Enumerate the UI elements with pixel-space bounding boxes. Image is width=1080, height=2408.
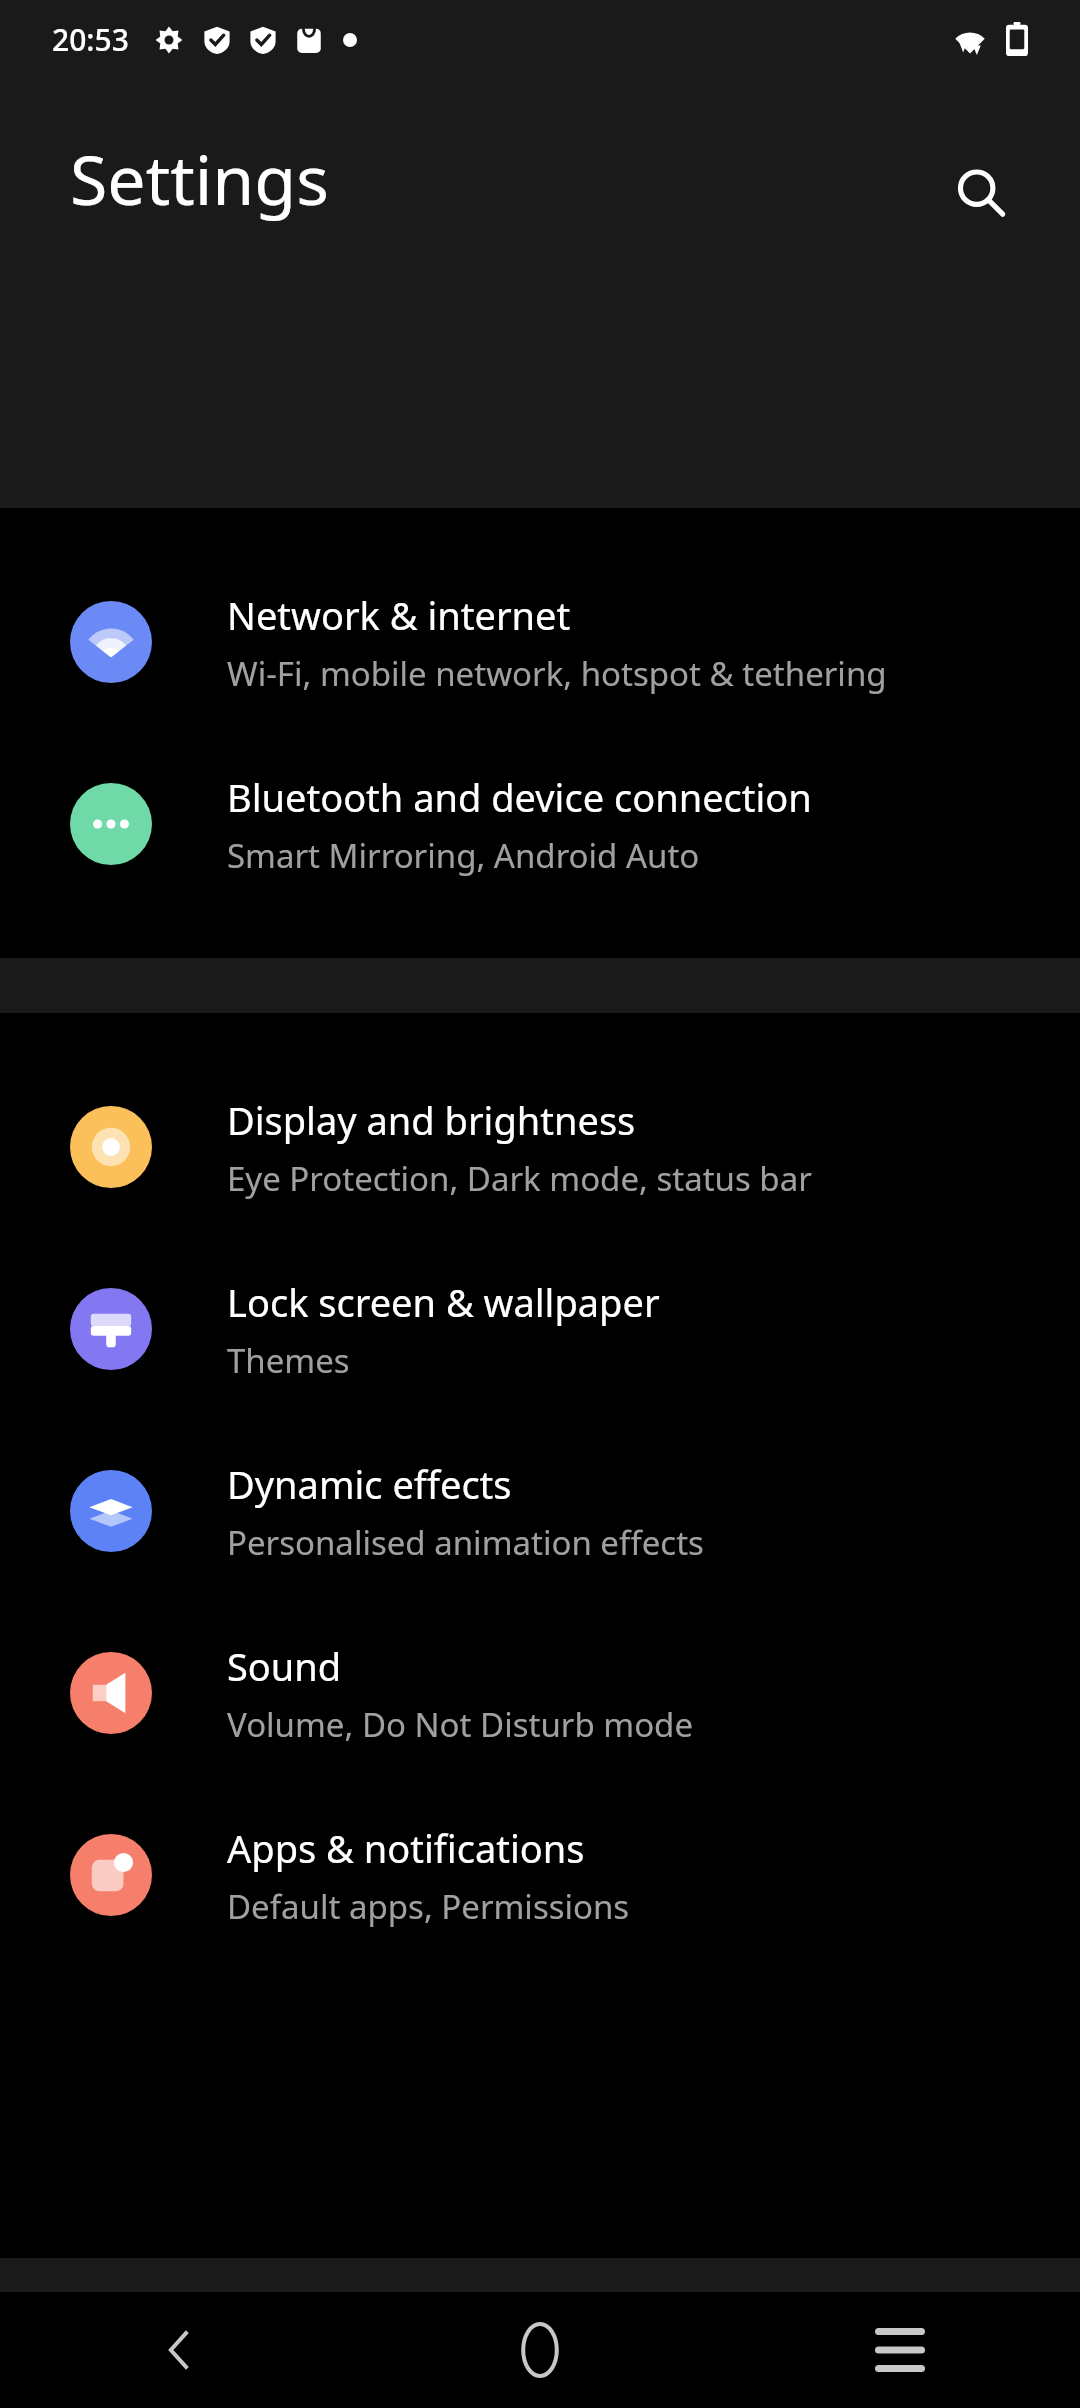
button[interactable]: Home (360, 2292, 720, 2408)
staticText: Volume, Do Not Disturb mode (227, 1702, 694, 1747)
staticText: Wi-Fi, mobile network, hotspot & tetheri… (227, 651, 887, 696)
staticText: Network & internet (227, 589, 571, 641)
button[interactable]: Apps & notifications (0, 1784, 1080, 1966)
button[interactable]: Search (935, 147, 1027, 239)
button[interactable]: Dynamic effects (0, 1420, 1080, 1602)
button[interactable]: Network & internet (0, 551, 1080, 733)
button[interactable]: Back (0, 2292, 360, 2408)
button[interactable]: Recent apps (720, 2292, 1080, 2408)
staticText: Lock screen & wallpaper (227, 1276, 660, 1328)
staticText: Themes (227, 1338, 350, 1383)
staticText: Apps & notifications (227, 1822, 585, 1874)
staticText: Default apps, Permissions (227, 1884, 630, 1929)
staticText: Display and brightness (227, 1094, 636, 1146)
staticText: 20:53 (52, 19, 129, 60)
staticText: Dynamic effects (227, 1458, 512, 1510)
staticText: Personalised animation effects (227, 1520, 704, 1565)
staticText: Eye Protection, Dark mode, status bar (227, 1156, 812, 1201)
staticText: Settings (70, 132, 329, 225)
staticText: Sound (227, 1640, 342, 1692)
staticText: Bluetooth and device connection (227, 771, 812, 823)
button[interactable]: Bluetooth and device connection (0, 733, 1080, 915)
button[interactable]: Lock screen & wallpaper (0, 1238, 1080, 1420)
button[interactable]: Sound (0, 1602, 1080, 1784)
staticText: Smart Mirroring, Android Auto (227, 833, 700, 878)
button[interactable]: Display and brightness (0, 1056, 1080, 1238)
